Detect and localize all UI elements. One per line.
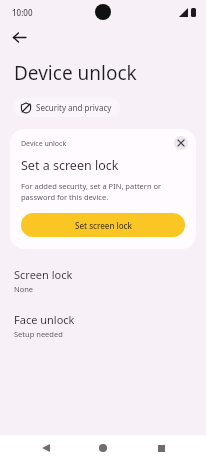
button[interactable]: Back — [8, 26, 30, 48]
button[interactable]: Dismiss — [174, 136, 188, 150]
staticText: Security and privacy — [36, 102, 112, 113]
staticText: Face unlock — [14, 312, 75, 327]
staticText: None — [14, 284, 34, 294]
staticText: 10:00 — [12, 7, 33, 18]
button[interactable]: Set screen lock — [21, 213, 185, 237]
staticText: Device unlock — [14, 60, 137, 86]
staticText: Device unlock — [21, 139, 67, 149]
button[interactable]: Recent apps — [149, 436, 173, 460]
button[interactable]: Back — [34, 436, 58, 460]
staticText: Screen lock — [14, 267, 73, 282]
button[interactable]: Screen lock — [0, 265, 206, 296]
button[interactable]: Home — [91, 436, 115, 460]
staticText: Set a screen lock — [21, 157, 119, 174]
staticText: Set screen lock — [75, 220, 132, 231]
button[interactable]: Face unlock — [0, 310, 206, 341]
staticText: Setup needed — [14, 329, 63, 339]
staticText: For added security, set a PIN, pattern o… — [21, 181, 185, 202]
button[interactable]: Security and privacy — [13, 98, 120, 117]
